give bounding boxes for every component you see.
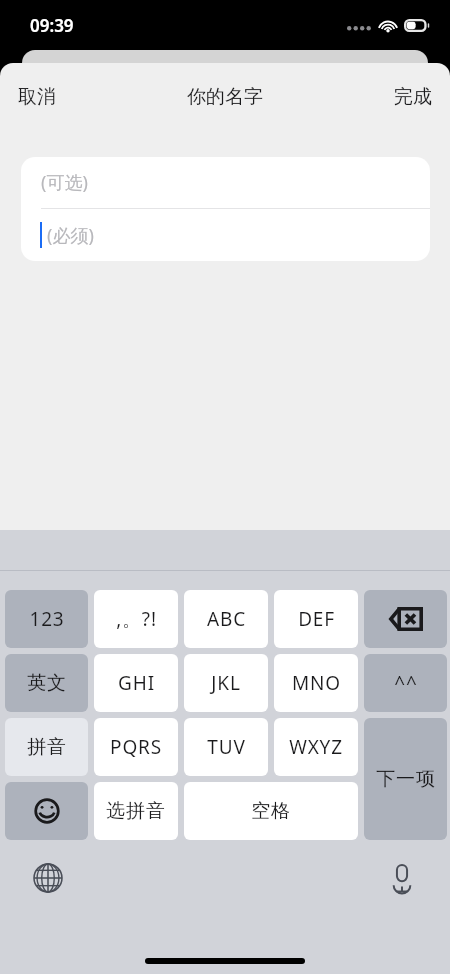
- staticText: ,。?!: [116, 606, 157, 632]
- staticText: 选拼音: [106, 799, 166, 823]
- staticText: TUV: [207, 734, 246, 760]
- staticText: ^^: [394, 670, 418, 696]
- button[interactable]: 空格: [184, 782, 358, 840]
- button[interactable]: Emoji: [5, 782, 88, 840]
- staticText: 123: [29, 606, 65, 632]
- button[interactable]: Switch keyboard: [24, 854, 72, 902]
- staticText: GHI: [118, 670, 155, 696]
- staticText: PQRS: [110, 734, 162, 760]
- button[interactable]: TUV: [184, 718, 268, 776]
- staticText: ABC: [207, 606, 246, 632]
- button[interactable]: 选拼音: [94, 782, 178, 840]
- button[interactable]: Delete: [364, 590, 447, 648]
- button[interactable]: 完成: [376, 75, 450, 119]
- button[interactable]: 取消: [0, 75, 74, 119]
- button[interactable]: PQRS: [94, 718, 178, 776]
- button[interactable]: ABC: [184, 590, 268, 648]
- button[interactable]: Dictation: [378, 854, 426, 902]
- staticText: 完成: [394, 85, 432, 109]
- button[interactable]: ^^: [364, 654, 447, 712]
- staticText: (可选): [41, 170, 88, 195]
- button[interactable]: (可选): [21, 157, 430, 208]
- staticText: 拼音: [27, 735, 67, 759]
- staticText: MNO: [292, 670, 341, 696]
- staticText: 空格: [251, 799, 291, 823]
- staticText: JKL: [211, 670, 241, 696]
- button[interactable]: (必须): [21, 209, 430, 261]
- button[interactable]: DEF: [274, 590, 358, 648]
- button[interactable]: JKL: [184, 654, 268, 712]
- staticText: 下一项: [376, 767, 436, 791]
- button[interactable]: ,。?!: [94, 590, 178, 648]
- button[interactable]: MNO: [274, 654, 358, 712]
- staticText: 取消: [18, 85, 56, 109]
- staticText: 英文: [27, 671, 67, 695]
- button[interactable]: 下一项: [364, 718, 447, 840]
- staticText: DEF: [298, 606, 335, 632]
- button[interactable]: GHI: [94, 654, 178, 712]
- button[interactable]: 英文: [5, 654, 88, 712]
- staticText: 09:39: [30, 14, 74, 37]
- staticText: 你的名字: [187, 85, 263, 109]
- button[interactable]: 123: [5, 590, 88, 648]
- staticText: (必须): [47, 223, 94, 248]
- button[interactable]: 拼音: [5, 718, 88, 776]
- staticText: WXYZ: [289, 734, 343, 760]
- button[interactable]: WXYZ: [274, 718, 358, 776]
